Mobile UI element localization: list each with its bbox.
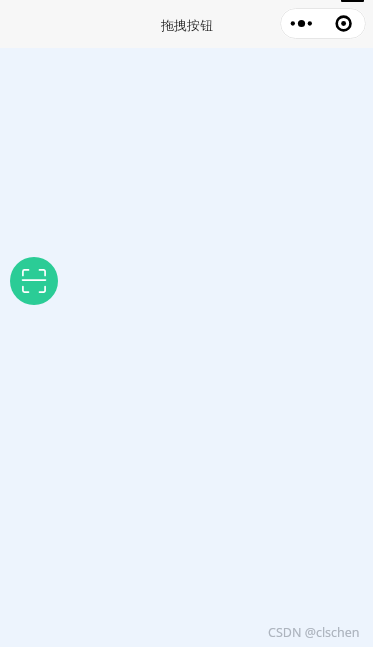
button[interactable]: More and close xyxy=(280,8,366,39)
button[interactable]: Scan xyxy=(10,257,58,305)
staticText: 拖拽按钮 xyxy=(161,17,213,33)
staticText: CSDN @clschen xyxy=(268,624,360,641)
